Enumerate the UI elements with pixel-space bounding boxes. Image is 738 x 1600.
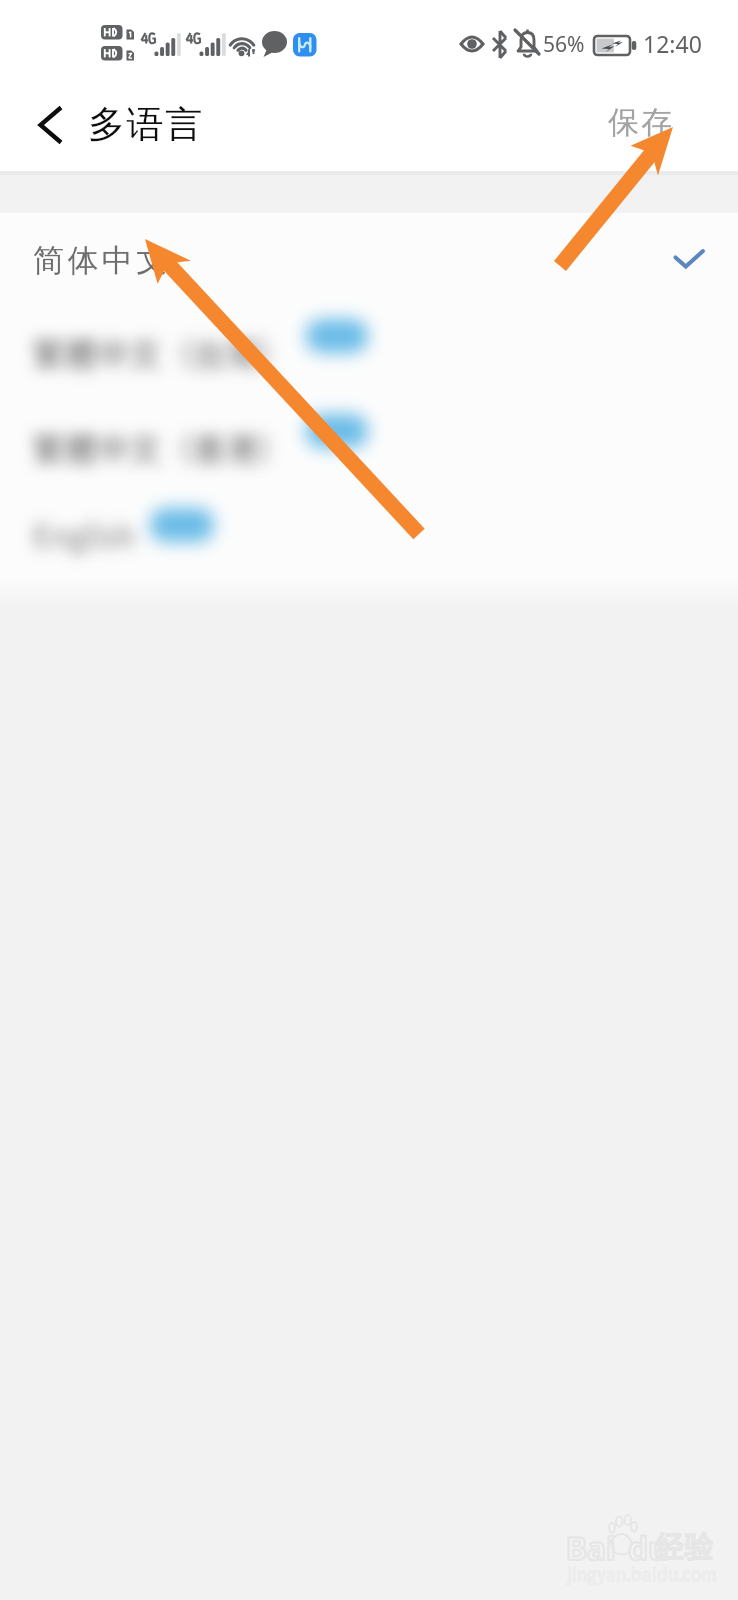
staticText: 保存: [608, 103, 675, 142]
staticText: 12:40: [643, 28, 702, 59]
button[interactable]: English: [0, 494, 738, 579]
button[interactable]: 保存: [571, 88, 711, 171]
button[interactable]: 简体中文: [0, 213, 738, 308]
staticText: 简体中文: [33, 241, 171, 280]
other: Selected: [673, 249, 705, 269]
button[interactable]: 繁體中文（香港）: [0, 403, 738, 498]
staticText: 56%: [543, 30, 585, 59]
staticText: 多语言: [88, 101, 204, 148]
button[interactable]: 繁體中文（台灣）: [0, 308, 738, 403]
button[interactable]: Back: [14, 91, 86, 159]
